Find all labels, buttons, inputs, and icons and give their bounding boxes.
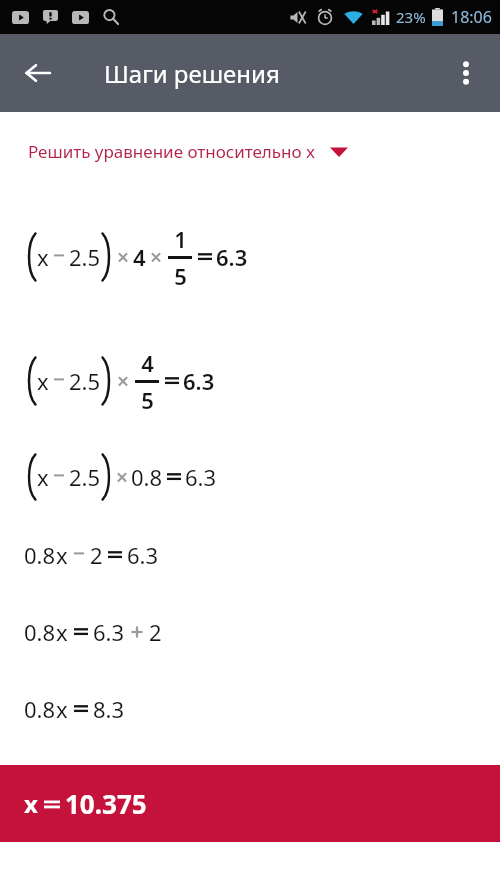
staticText: 8.3	[93, 694, 125, 724]
staticText: x	[24, 787, 38, 820]
staticText: x	[37, 366, 49, 396]
button[interactable]: Решить уравнение относительно x	[0, 134, 372, 169]
staticText: 2	[90, 540, 103, 570]
staticText: 2.5	[69, 242, 101, 272]
staticText: 5	[174, 261, 187, 291]
staticText: x	[37, 462, 49, 492]
staticText: 6.3	[183, 366, 215, 396]
staticText: x	[56, 617, 68, 647]
staticText: 6.3	[185, 462, 217, 492]
staticText: 1	[174, 224, 187, 254]
staticText: 10.375	[65, 786, 147, 821]
staticText: 23%	[396, 7, 426, 27]
staticText: 5	[141, 385, 154, 415]
staticText: x	[37, 242, 49, 272]
button[interactable]: More options	[440, 47, 492, 99]
staticText: 0.8	[24, 617, 56, 647]
staticText: 2	[149, 617, 162, 647]
staticText: Шаги решения	[104, 57, 280, 90]
staticText: 18:06	[451, 6, 492, 28]
button[interactable]: x	[0, 765, 500, 842]
staticText: 0.8	[24, 694, 56, 724]
staticText: 2.5	[69, 366, 101, 396]
staticText: 2.5	[69, 462, 101, 492]
staticText: x	[56, 694, 68, 724]
button[interactable]: Back	[12, 47, 64, 99]
staticText: 6.3	[216, 242, 248, 272]
staticText: 6.3	[93, 617, 125, 647]
staticText: 6.3	[127, 540, 159, 570]
staticText: 4	[133, 242, 146, 272]
staticText: 0.8	[131, 462, 163, 492]
staticText: 4	[141, 348, 154, 378]
staticText: x	[56, 540, 68, 570]
staticText: 0.8	[24, 540, 56, 570]
staticText: Решить уравнение относительно x	[28, 140, 316, 163]
